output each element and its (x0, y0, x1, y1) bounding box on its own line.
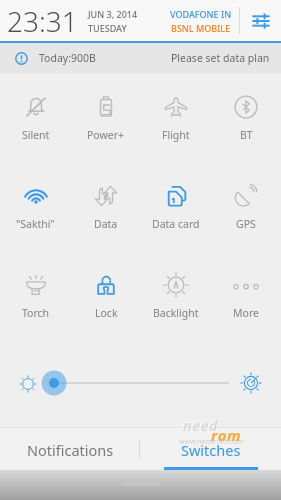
staticText: Switches (181, 440, 241, 460)
staticText: www.needrom.com (179, 437, 244, 447)
button[interactable]: Data (71, 162, 141, 251)
button[interactable]: Switches (140, 428, 281, 470)
button[interactable]: Notifications (0, 428, 140, 470)
staticText: Flight (162, 128, 190, 142)
staticText: Torch (22, 306, 50, 320)
staticText: Notifications (27, 440, 114, 460)
button[interactable]: Backlight (141, 251, 211, 340)
staticText: VODAFONE IN (170, 8, 232, 20)
button[interactable]: Power+ (71, 73, 141, 162)
staticText: Silent (22, 128, 50, 142)
staticText: More (233, 306, 259, 320)
staticText: need (182, 415, 217, 434)
staticText: TUESDAY (88, 22, 127, 34)
button[interactable]: Quick settings (240, 0, 281, 41)
button[interactable]: Lock (71, 251, 141, 340)
staticText: need (183, 416, 218, 435)
button[interactable]: Torch (0, 251, 71, 340)
staticText: BT (240, 128, 253, 142)
staticText: Data (94, 217, 118, 231)
staticText: 23:31 (7, 2, 78, 40)
button[interactable]: Today:900B (0, 43, 281, 73)
button[interactable]: Data card (141, 162, 211, 251)
button[interactable]: BT (211, 73, 281, 162)
button[interactable]: More (211, 251, 281, 340)
staticText: Backlight (153, 306, 199, 320)
staticText: "Sakthi" (16, 217, 55, 231)
staticText: GPS (236, 217, 256, 231)
staticText: Today:900B (39, 51, 96, 65)
button[interactable]: "Sakthi" (0, 162, 71, 251)
button[interactable]: Silent (0, 73, 71, 162)
staticText: Data card (152, 217, 200, 231)
staticText: BSNL MOBILE (171, 22, 231, 34)
staticText: Please set data plan (171, 51, 270, 65)
staticText: JUN 3, 2014 (88, 8, 138, 20)
button[interactable]: GPS (211, 162, 281, 251)
staticText: Lock (95, 306, 118, 320)
button[interactable]: Flight (141, 73, 211, 162)
staticText: Power+ (87, 128, 125, 142)
staticText: rom (211, 425, 242, 445)
